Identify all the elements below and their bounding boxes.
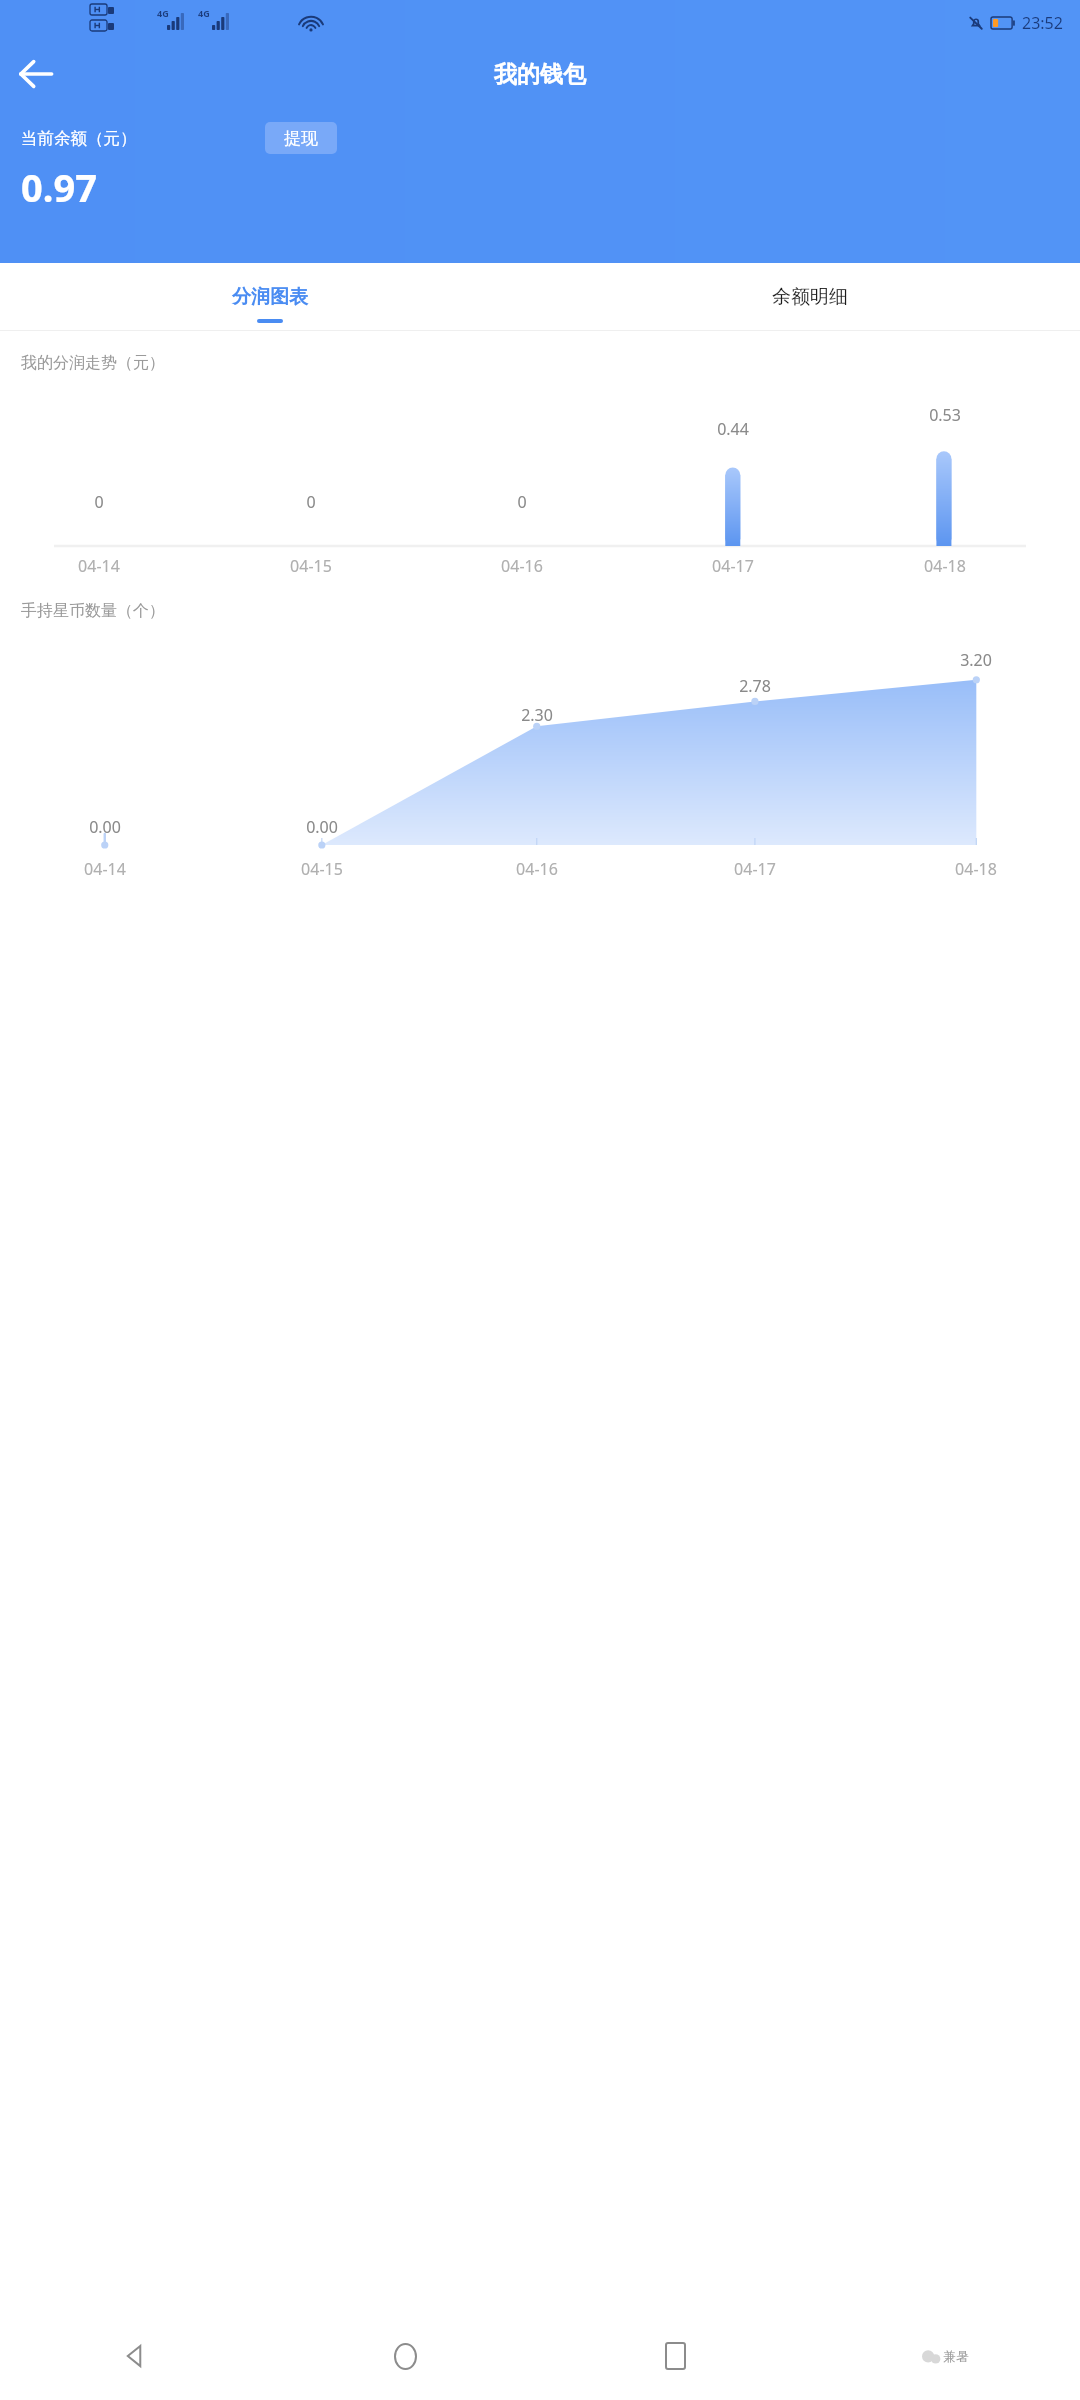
staticText: 0	[306, 491, 316, 513]
staticText: 04-18	[924, 555, 966, 577]
button[interactable]: Home	[270, 2312, 540, 2400]
staticText: 当前余额（元）	[21, 128, 137, 149]
staticText: 0.44	[717, 418, 749, 440]
staticText: 2.78	[739, 675, 771, 697]
staticText: 兼暑	[943, 2348, 969, 2364]
staticText: 余额明细	[772, 285, 848, 309]
staticText: 0.53	[929, 404, 961, 426]
staticText: 2.30	[521, 704, 553, 726]
staticText: 4G	[198, 7, 210, 19]
staticText: 04-14	[84, 858, 126, 880]
staticText: 分润图表	[232, 285, 308, 309]
staticText: 04-14	[78, 555, 120, 577]
staticText: 04-15	[301, 858, 343, 880]
staticText: 手持星币数量（个）	[21, 601, 165, 621]
button[interactable]: Recent apps	[540, 2312, 810, 2400]
staticText: 0.00	[306, 816, 338, 838]
staticText: 0.00	[89, 816, 121, 838]
staticText: 我的钱包	[494, 60, 586, 89]
staticText: 我的分润走势（元）	[21, 353, 165, 373]
button[interactable]: Back	[0, 2312, 270, 2400]
staticText: 提现	[284, 128, 318, 149]
staticText: 3.20	[960, 649, 992, 671]
staticText: 0	[94, 491, 104, 513]
button[interactable]: 提现	[265, 122, 337, 154]
staticText: 04-17	[734, 858, 776, 880]
staticText: 04-17	[712, 555, 754, 577]
staticText: 0	[517, 491, 527, 513]
staticText: 04-15	[290, 555, 332, 577]
staticText: 04-18	[955, 858, 997, 880]
staticText: 0.97	[21, 161, 97, 213]
button[interactable]: 分润图表	[0, 263, 540, 330]
staticText: 4G	[157, 7, 169, 19]
staticText: 04-16	[516, 858, 558, 880]
staticText: 04-16	[501, 555, 543, 577]
staticText: 23:52	[1022, 12, 1063, 34]
button[interactable]: 余额明细	[540, 263, 1080, 330]
button[interactable]: Back	[13, 51, 59, 97]
